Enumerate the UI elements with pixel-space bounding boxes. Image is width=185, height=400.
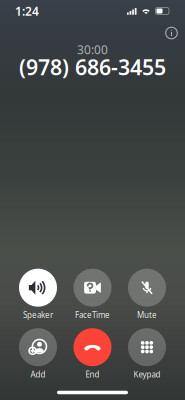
button[interactable]: Keypad	[120, 328, 174, 380]
button[interactable]: Call info	[160, 21, 183, 44]
button[interactable]: Mute	[120, 269, 174, 320]
staticText: End	[85, 369, 99, 380]
staticText: 1:24	[15, 3, 39, 19]
button[interactable]: Speaker	[11, 269, 65, 320]
staticText: Add	[30, 369, 45, 380]
staticText: Keypad	[133, 369, 160, 380]
button[interactable]: End call	[65, 328, 119, 380]
staticText: (978) 686-3455	[19, 53, 166, 81]
staticText: FaceTime	[75, 310, 110, 320]
button[interactable]: FaceTime	[65, 269, 119, 320]
staticText: Mute	[137, 310, 157, 320]
button[interactable]: Add call	[11, 328, 65, 380]
staticText: 30:00	[77, 41, 108, 57]
staticText: Speaker	[23, 310, 53, 320]
